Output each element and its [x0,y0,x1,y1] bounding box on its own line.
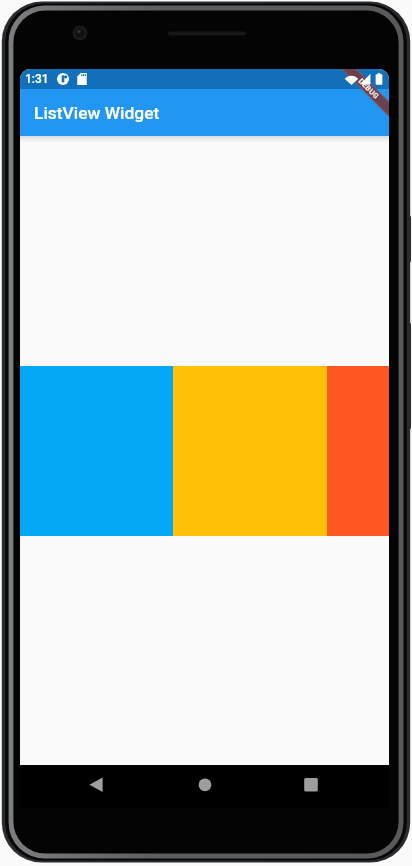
button[interactable]: Back [56,765,136,808]
staticText: ListView Widget [34,103,160,123]
staticText: 1:31 [25,72,49,86]
button[interactable]: Recents [271,765,351,808]
button[interactable]: Home [165,765,245,808]
